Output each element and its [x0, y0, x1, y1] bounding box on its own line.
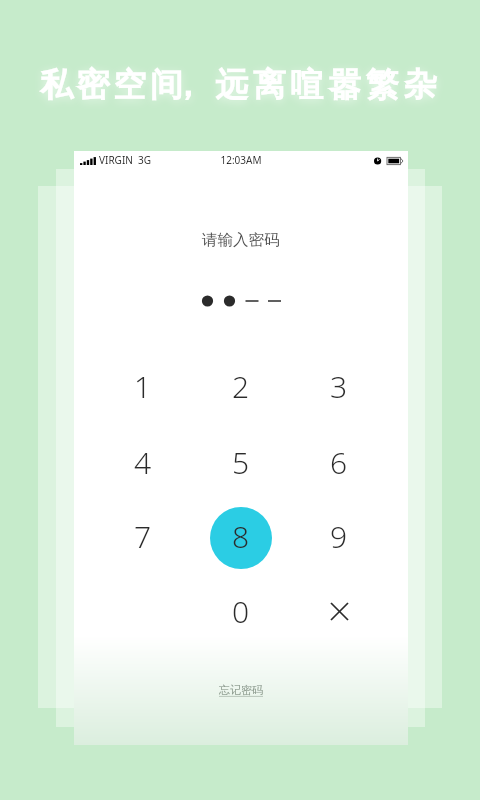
staticText: 3 — [330, 366, 348, 407]
staticText: 8 — [232, 516, 250, 557]
staticText: 9 — [330, 516, 348, 557]
staticText: 5 — [232, 442, 250, 483]
staticText: 0 — [232, 591, 250, 632]
button[interactable]: 0 — [196, 575, 286, 647]
staticText: ， — [171, 64, 208, 106]
staticText: 2 — [232, 366, 250, 407]
other: Battery and alarm — [373, 154, 405, 168]
button[interactable]: 6 — [294, 426, 384, 498]
staticText: VIRGIN 3G — [99, 153, 152, 167]
button[interactable]: 3 — [294, 350, 384, 422]
button[interactable]: 2 — [196, 350, 286, 422]
staticText: 6 — [330, 442, 348, 483]
staticText: 1 — [134, 366, 152, 407]
button[interactable]: 1 — [98, 350, 188, 422]
staticText: 4 — [134, 442, 152, 483]
staticText: 远离喧嚣繁杂 — [215, 64, 442, 106]
other: Signal strength — [80, 156, 97, 165]
button[interactable]: 5 — [196, 426, 286, 498]
button[interactable]: 4 — [98, 426, 188, 498]
button[interactable]: 7 — [98, 500, 188, 572]
button[interactable]: Delete — [294, 575, 384, 647]
staticText: 私密空间 — [40, 64, 187, 106]
staticText: 7 — [134, 516, 152, 557]
button[interactable]: 忘记密码 — [207, 677, 275, 703]
button[interactable]: 9 — [294, 500, 384, 572]
staticText: 忘记密码 — [219, 683, 263, 697]
staticText: 12:03AM — [74, 153, 408, 167]
staticText: 请输入密码 — [202, 230, 280, 250]
button[interactable]: 8 — [196, 500, 286, 572]
